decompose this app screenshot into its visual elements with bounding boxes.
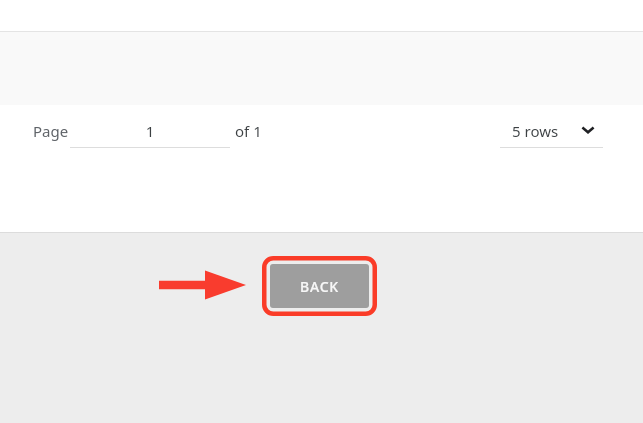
button[interactable]: BACK (270, 264, 369, 308)
button[interactable]: 5 rows (500, 112, 603, 148)
staticText: 5 rows (512, 121, 559, 141)
button[interactable]: 1 (70, 112, 230, 148)
staticText: of 1 (235, 121, 262, 141)
staticText: BACK (300, 277, 339, 296)
staticText: Page (33, 121, 69, 141)
other: Rows per page (581, 125, 595, 135)
staticText: 1 (70, 121, 230, 141)
